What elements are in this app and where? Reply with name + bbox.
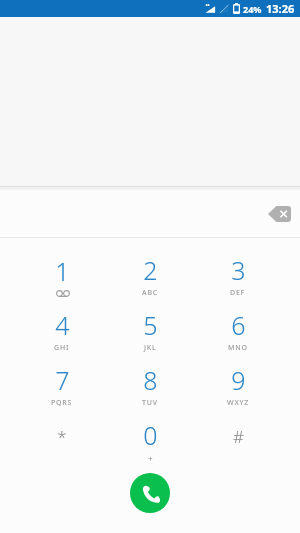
staticText: 24% [243,3,262,15]
staticText: 7 [55,363,70,397]
button[interactable]: Backspace [264,199,294,229]
button[interactable]: Call [130,473,170,513]
button[interactable]: 4 [18,300,106,355]
staticText: PQRS [51,398,73,408]
staticText: 3 [231,253,246,287]
staticText: * [57,425,67,448]
button[interactable]: 3 [194,245,282,300]
staticText: MNO [228,343,248,353]
button[interactable]: 5 [106,300,194,355]
button[interactable]: 8 [106,355,194,410]
staticText: 9 [231,363,246,397]
button[interactable]: 6 [194,300,282,355]
button[interactable]: 1 [18,245,106,300]
staticText: 1 [55,254,70,288]
button[interactable]: * [18,410,106,465]
staticText: JKL [144,343,157,353]
staticText: WXYZ [227,398,250,408]
staticText: ABC [142,288,159,298]
staticText: TUV [142,398,158,408]
staticText: 13:26 [266,1,295,16]
staticText: # [233,425,244,448]
staticText: + [148,453,153,464]
button[interactable]: 7 [18,355,106,410]
button[interactable]: 9 [194,355,282,410]
staticText: 4 [55,308,70,342]
staticText: 5 [143,308,158,342]
staticText: DEF [230,288,246,298]
button[interactable]: 2 [106,245,194,300]
staticText: GHI [54,343,70,353]
staticText: 6 [231,308,246,342]
button[interactable]: # [194,410,282,465]
staticText: 8 [143,363,158,397]
button[interactable]: 0 [106,410,194,465]
staticText: 0 [143,418,158,452]
staticText: 2 [143,253,158,287]
